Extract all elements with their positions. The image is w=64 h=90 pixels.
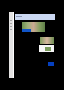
- button[interactable]: [39, 45, 54, 52]
- button[interactable]: [9, 12, 13, 78]
- button[interactable]: [15, 14, 55, 20]
